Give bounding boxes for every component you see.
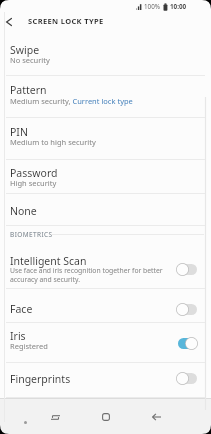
button[interactable]: [145, 406, 167, 428]
button[interactable]: None: [0, 194, 211, 226]
staticText: Pattern: [10, 83, 47, 97]
staticText: Use face and iris recognition together f…: [10, 266, 176, 284]
staticText: 100%: [144, 2, 161, 11]
staticText: Fingerprints: [10, 372, 71, 386]
staticText: SCREEN LOCK TYPE: [28, 16, 104, 26]
staticText: PIN: [10, 125, 28, 139]
staticText: No security: [10, 55, 50, 65]
staticText: Iris: [10, 329, 26, 343]
button[interactable]: Face: [0, 289, 211, 323]
staticText: High security: [10, 178, 57, 188]
staticText: Registered: [10, 341, 48, 351]
button[interactable]: PIN: [0, 118, 211, 160]
button[interactable]: Password: [0, 160, 211, 194]
button[interactable]: Intelligent Scan: [0, 247, 211, 289]
staticText: BIOMETRICS: [10, 230, 53, 239]
staticText: Swipe: [10, 43, 40, 57]
staticText: Medium to high security: [10, 137, 96, 147]
staticText: 10:00: [170, 2, 187, 11]
button[interactable]: [44, 406, 66, 428]
staticText: Password: [10, 166, 58, 180]
staticText: Intelligent Scan: [10, 254, 87, 268]
staticText: Medium security, Current lock type: [10, 96, 133, 106]
button[interactable]: Fingerprints: [0, 363, 211, 398]
button[interactable]: Iris: [0, 323, 211, 363]
button[interactable]: [0, 14, 24, 29]
staticText: None: [10, 204, 37, 218]
button[interactable]: [95, 406, 117, 428]
staticText: Face: [10, 302, 33, 316]
button[interactable]: Pattern: [0, 76, 211, 118]
button[interactable]: Swipe: [0, 29, 211, 76]
